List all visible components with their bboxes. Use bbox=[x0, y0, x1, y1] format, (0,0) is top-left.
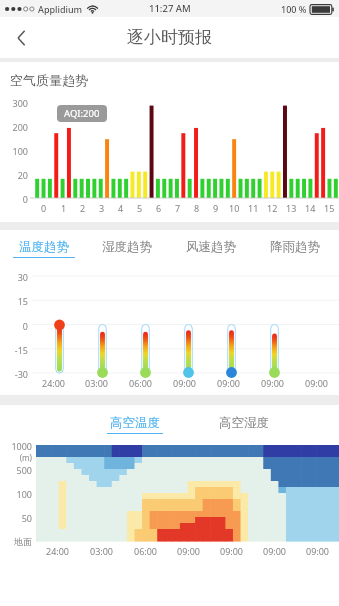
staticText: 06:00 bbox=[134, 545, 158, 557]
staticText: 06:00 bbox=[129, 377, 153, 389]
staticText: 15 bbox=[324, 202, 335, 214]
staticText: 0 bbox=[0, 320, 28, 332]
staticText: 09:00 bbox=[305, 377, 329, 389]
button[interactable]: Back bbox=[0, 17, 42, 58]
staticText: 03:00 bbox=[90, 545, 114, 557]
staticText: -15 bbox=[0, 344, 28, 356]
staticText: 1000 bbox=[0, 440, 32, 452]
staticText: 300 bbox=[0, 97, 28, 109]
staticText: 8 bbox=[194, 202, 200, 214]
staticText: Applidium bbox=[38, 3, 83, 15]
staticText: 24:00 bbox=[46, 545, 70, 557]
staticText: 高空湿度 bbox=[219, 415, 269, 431]
staticText: 湿度趋势 bbox=[102, 239, 152, 255]
staticText: 09:00 bbox=[220, 545, 244, 557]
staticText: 4 bbox=[118, 202, 124, 214]
staticText: 10 bbox=[229, 202, 240, 214]
staticText: 风速趋势 bbox=[186, 239, 236, 255]
button[interactable]: 湿度趋势 bbox=[85, 239, 169, 258]
staticText: 09:00 bbox=[177, 545, 201, 557]
staticText: 11:27 AM bbox=[149, 2, 191, 15]
button[interactable]: 30 bbox=[0, 268, 339, 392]
staticText: 7 bbox=[175, 202, 181, 214]
staticText: 1 bbox=[61, 202, 67, 214]
staticText: AQI:200 bbox=[64, 107, 100, 120]
staticText: 500 bbox=[0, 464, 32, 476]
staticText: 0 bbox=[0, 193, 28, 205]
staticText: 09:00 bbox=[173, 377, 197, 389]
staticText: 20 bbox=[0, 169, 28, 181]
staticText: 13 bbox=[286, 202, 297, 214]
staticText: 逐小时预报 bbox=[127, 27, 212, 48]
button[interactable]: 1000 bbox=[0, 443, 339, 559]
button[interactable]: 温度趋势 bbox=[2, 239, 85, 258]
staticText: 50 bbox=[0, 512, 32, 524]
button[interactable]: 降雨趋势 bbox=[253, 239, 337, 258]
staticText: 09:00 bbox=[261, 377, 285, 389]
staticText: 降雨趋势 bbox=[270, 239, 320, 255]
staticText: 5 bbox=[137, 202, 143, 214]
staticText: 14 bbox=[305, 202, 316, 214]
button[interactable]: 高空温度 bbox=[80, 415, 189, 434]
staticText: 30 bbox=[0, 271, 28, 283]
staticText: 100 bbox=[0, 488, 32, 500]
staticText: 15 bbox=[0, 295, 28, 307]
staticText: 09:00 bbox=[306, 545, 330, 557]
staticText: -30 bbox=[0, 368, 28, 380]
staticText: 6 bbox=[156, 202, 162, 214]
staticText: 2 bbox=[80, 202, 86, 214]
staticText: 3 bbox=[99, 202, 105, 214]
button[interactable]: 300 bbox=[0, 96, 339, 218]
staticText: 200 bbox=[0, 121, 28, 133]
staticText: 高空温度 bbox=[110, 415, 160, 431]
staticText: 11 bbox=[248, 202, 259, 214]
staticText: 100 % bbox=[281, 3, 307, 15]
staticText: (m) bbox=[0, 452, 32, 463]
staticText: 09:00 bbox=[263, 545, 287, 557]
staticText: 24:00 bbox=[42, 377, 66, 389]
staticText: 地面 bbox=[0, 536, 32, 547]
staticText: 100 bbox=[0, 145, 28, 157]
staticText: 0 bbox=[41, 202, 47, 214]
staticText: 09:00 bbox=[217, 377, 241, 389]
button[interactable]: 风速趋势 bbox=[169, 239, 253, 258]
button[interactable]: AQI:200 bbox=[57, 105, 107, 122]
staticText: 空气质量趋势 bbox=[10, 72, 88, 88]
staticText: 03:00 bbox=[85, 377, 109, 389]
staticText: 温度趋势 bbox=[19, 239, 69, 255]
staticText: 9 bbox=[213, 202, 219, 214]
staticText: 12 bbox=[267, 202, 278, 214]
button[interactable]: 高空湿度 bbox=[189, 415, 299, 434]
